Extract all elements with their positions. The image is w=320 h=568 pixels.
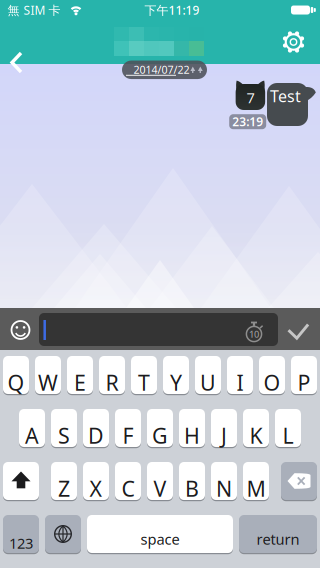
staticText: Test	[270, 85, 301, 107]
button[interactable]: Z	[51, 462, 77, 501]
button[interactable]: Settings	[278, 27, 308, 57]
staticText: R	[105, 368, 118, 397]
staticText: D	[88, 421, 104, 450]
staticText: Y	[170, 368, 182, 397]
button[interactable]: 123	[3, 515, 39, 554]
button[interactable]: S	[51, 409, 77, 448]
button[interactable]: C	[115, 462, 141, 501]
button[interactable]: Send	[286, 320, 310, 342]
button[interactable]: K	[243, 409, 269, 448]
staticText: Q	[7, 368, 24, 397]
staticText: U	[200, 368, 216, 397]
button[interactable]: E	[67, 356, 93, 395]
button[interactable]: D	[83, 409, 109, 448]
button[interactable]: W	[35, 356, 61, 395]
staticText: S	[58, 421, 70, 450]
staticText: C	[121, 474, 134, 503]
button[interactable]: A	[19, 409, 45, 448]
staticText: space	[140, 529, 179, 549]
staticText: 2014/07/22	[133, 62, 189, 77]
staticText: F	[122, 421, 133, 450]
button[interactable]: N	[211, 462, 237, 501]
button[interactable]: Message field	[39, 313, 278, 346]
staticText: 7	[246, 88, 254, 107]
button[interactable]: G	[147, 409, 173, 448]
button[interactable]: P	[291, 356, 317, 395]
staticText: A	[25, 421, 39, 450]
button[interactable]: R	[99, 356, 125, 395]
button[interactable]: F	[115, 409, 141, 448]
staticText: N	[216, 474, 232, 503]
button[interactable]: I	[227, 356, 253, 395]
staticText: 10	[249, 328, 259, 340]
staticText: E	[74, 368, 86, 397]
button[interactable]: L	[275, 409, 301, 448]
staticText: 下午11:19	[144, 2, 199, 18]
staticText: T	[138, 368, 150, 397]
staticText: I	[236, 368, 243, 397]
staticText: J	[221, 421, 227, 450]
staticText: Z	[58, 474, 70, 503]
staticText: W	[38, 368, 58, 397]
button[interactable]: O	[259, 356, 285, 395]
button[interactable]: Next keyboard	[45, 515, 81, 554]
staticText: G	[152, 421, 168, 450]
button[interactable]: Emoji	[9, 319, 31, 341]
button[interactable]: Timer	[243, 320, 265, 342]
button[interactable]: Delete	[281, 462, 317, 501]
button[interactable]: space	[87, 515, 233, 554]
staticText: P	[297, 368, 310, 397]
button[interactable]: M	[243, 462, 269, 501]
button[interactable]: X	[83, 462, 109, 501]
staticText: 123	[9, 533, 33, 553]
button[interactable]: T	[131, 356, 157, 395]
button[interactable]: J	[211, 409, 237, 448]
button[interactable]: Back	[1, 20, 31, 64]
staticText: B	[185, 474, 199, 503]
staticText: L	[282, 421, 293, 450]
button[interactable]: U	[195, 356, 221, 395]
staticText: return	[256, 529, 299, 549]
button[interactable]: H	[179, 409, 205, 448]
staticText: H	[184, 421, 200, 450]
button[interactable]: Y	[163, 356, 189, 395]
staticText: M	[246, 474, 265, 503]
button[interactable]: Q	[3, 356, 29, 395]
staticText: X	[89, 474, 102, 503]
staticText: 無 SIM 卡	[7, 2, 60, 18]
button[interactable]: Shift	[3, 462, 39, 501]
button[interactable]: B	[179, 462, 205, 501]
button[interactable]: return	[239, 515, 317, 554]
button[interactable]: V	[147, 462, 173, 501]
staticText: V	[153, 474, 166, 503]
staticText: K	[249, 421, 262, 450]
staticText: 23:19	[232, 113, 263, 129]
staticText: O	[263, 368, 280, 397]
